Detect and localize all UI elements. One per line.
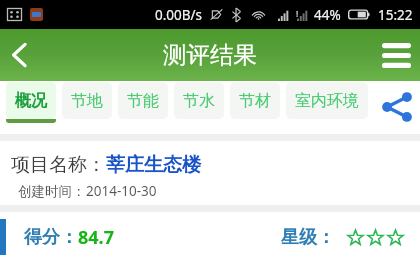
staticText: 44% bbox=[314, 6, 341, 24]
button[interactable]: 节材 bbox=[230, 82, 280, 119]
button[interactable]: Menu bbox=[373, 29, 420, 81]
staticText: 84.7 bbox=[78, 225, 114, 250]
staticText: 测评结果 bbox=[163, 40, 257, 70]
staticText: 项目名称： bbox=[11, 153, 106, 177]
staticText: 得分： bbox=[24, 226, 78, 249]
staticText: 室内环境 bbox=[295, 91, 359, 111]
staticText: 节材 bbox=[239, 91, 271, 111]
staticText: ! bbox=[296, 8, 299, 19]
staticText: 节地 bbox=[71, 91, 103, 111]
staticText: 概况 bbox=[15, 91, 47, 111]
button[interactable]: 概况 bbox=[6, 82, 56, 119]
button[interactable]: 室内环境 bbox=[286, 82, 368, 119]
button[interactable]: Back bbox=[0, 29, 37, 81]
staticText: 节能 bbox=[127, 91, 159, 111]
button[interactable]: Share bbox=[379, 81, 415, 132]
staticText: 创建时间： bbox=[18, 183, 86, 200]
staticText: 2014-10-30 bbox=[86, 182, 157, 200]
staticText: 节水 bbox=[183, 91, 215, 111]
button[interactable]: 节地 bbox=[62, 82, 112, 119]
staticText: 15:22 bbox=[378, 6, 413, 24]
staticText: 0.00B/s bbox=[155, 6, 203, 24]
staticText: 星级： bbox=[281, 226, 335, 249]
button[interactable]: 节水 bbox=[174, 82, 224, 119]
staticText: 莘庄生态楼 bbox=[106, 153, 201, 177]
button[interactable]: 节能 bbox=[118, 82, 168, 119]
